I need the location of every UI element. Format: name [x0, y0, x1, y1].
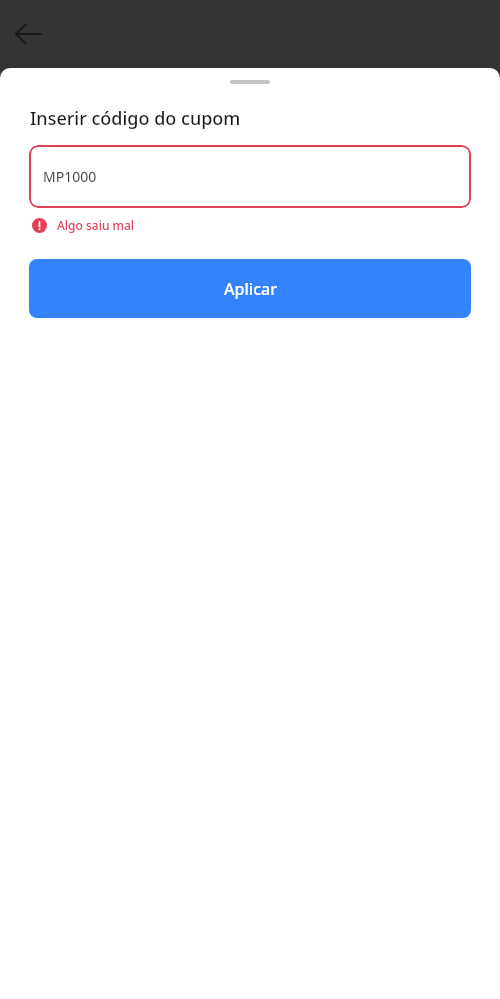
staticText: MP1000 [43, 167, 97, 186]
staticText: Algo saiu mal [57, 217, 135, 233]
button[interactable]: MP1000 [29, 145, 471, 208]
button[interactable]: Aplicar [29, 259, 471, 318]
staticText: Aplicar [224, 278, 277, 300]
button[interactable]: Back [8, 14, 48, 54]
staticText: Inserir código do cupom [30, 106, 241, 131]
